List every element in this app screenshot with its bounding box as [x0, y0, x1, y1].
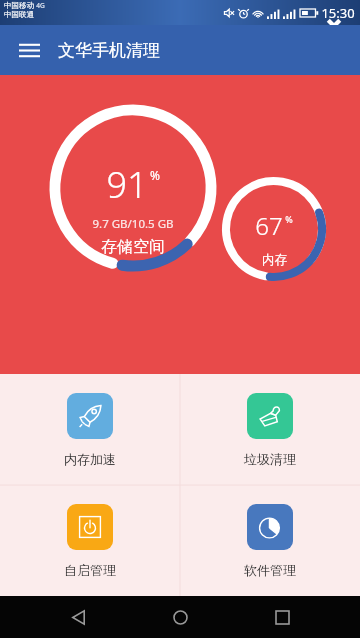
button[interactable]: 内存加速	[0, 374, 180, 485]
button[interactable]: 垃圾清理	[180, 374, 360, 485]
button[interactable]: 软件管理	[180, 485, 360, 596]
button[interactable]: Menu	[14, 35, 44, 65]
button[interactable]: Back	[54, 596, 102, 638]
staticText: 存储空间	[101, 237, 165, 257]
button[interactable]: Home	[156, 596, 204, 638]
staticText: 9.7 GB/10.5 GB	[92, 216, 174, 232]
staticText: 91	[106, 160, 148, 209]
staticText: 中国联通	[4, 10, 34, 19]
staticText: 垃圾清理	[244, 451, 296, 467]
staticText: 文华手机清理	[58, 40, 160, 61]
staticText: %	[150, 167, 160, 183]
staticText: 软件管理	[244, 562, 296, 578]
staticText: %	[285, 213, 293, 225]
staticText: 4G	[36, 1, 45, 10]
button[interactable]: Close	[322, 14, 346, 38]
staticText: 自启管理	[64, 562, 116, 578]
staticText: 内存	[262, 252, 287, 268]
staticText: 15:30	[321, 4, 355, 22]
staticText: 内存加速	[64, 451, 116, 467]
staticText: 中国移动	[4, 1, 34, 10]
button[interactable]: 自启管理	[0, 485, 180, 596]
button[interactable]: Recent apps	[258, 596, 306, 638]
staticText: 67	[255, 209, 283, 242]
